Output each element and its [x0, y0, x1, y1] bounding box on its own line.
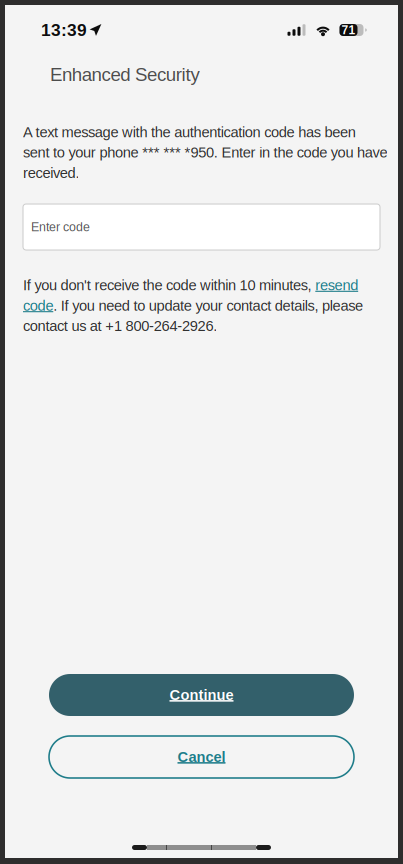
button[interactable]: Cancel — [49, 736, 354, 778]
button[interactable]: Continue — [49, 674, 354, 716]
staticText: Continue — [169, 687, 233, 703]
staticText: Cancel — [177, 749, 225, 765]
staticText: Enhanced Security — [50, 64, 199, 85]
staticText: 71 — [341, 23, 355, 37]
staticText: A text message with the authentication c… — [23, 124, 387, 181]
staticText: If you don't receive the code within 10 … — [23, 277, 363, 334]
staticText: Enter code — [31, 220, 90, 234]
staticText: 13:39 — [41, 20, 87, 40]
